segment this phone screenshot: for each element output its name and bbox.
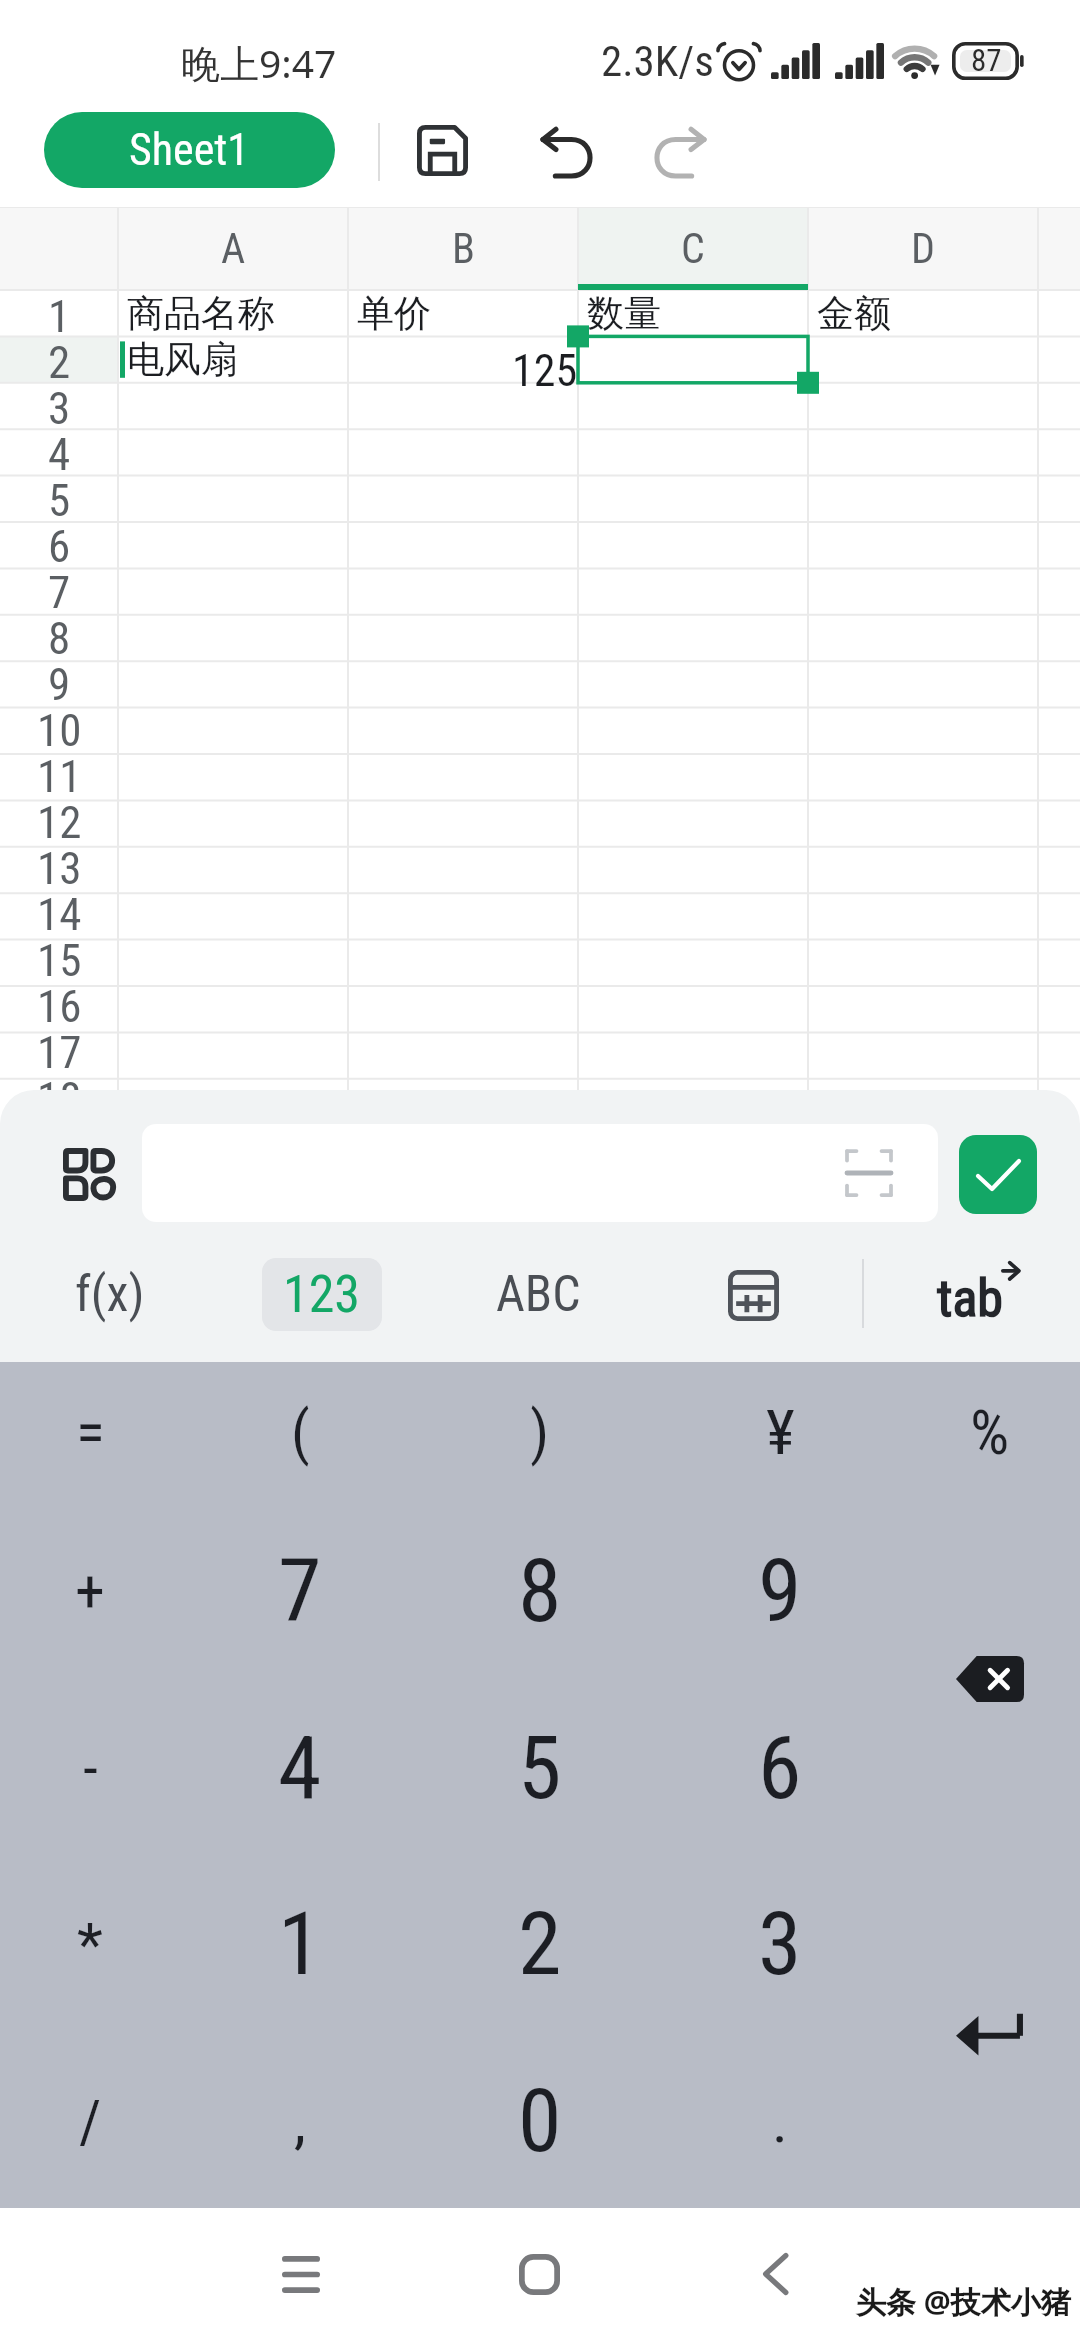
staticText: 0 bbox=[518, 2069, 562, 2172]
staticText: 11 bbox=[37, 750, 82, 796]
staticText: 123 bbox=[283, 1264, 361, 1325]
staticText: 6 bbox=[758, 1716, 802, 1819]
button[interactable]: Enter bbox=[900, 1855, 1080, 2208]
staticText: , bbox=[294, 2086, 306, 2156]
staticText: 2 bbox=[518, 1892, 562, 1995]
staticText: . bbox=[772, 2086, 788, 2156]
staticText: 头条 @技术小猪 bbox=[856, 2281, 1071, 2322]
staticText: 13 bbox=[37, 842, 82, 888]
staticText: + bbox=[75, 1556, 105, 1626]
button[interactable]: . bbox=[660, 2032, 900, 2209]
staticText: 5 bbox=[48, 474, 71, 520]
button[interactable]: Redo bbox=[639, 106, 727, 194]
button[interactable]: 5 bbox=[420, 1679, 660, 1856]
button[interactable]: 7 bbox=[180, 1502, 420, 1679]
button[interactable]: Sheet1 bbox=[44, 112, 335, 188]
staticText: 3 bbox=[758, 1892, 802, 1995]
staticText: 9 bbox=[758, 1539, 802, 1642]
staticText: 14 bbox=[37, 888, 82, 934]
staticText: 87 bbox=[971, 42, 1002, 78]
button[interactable]: / bbox=[0, 2032, 180, 2209]
button[interactable]: 1 bbox=[180, 1855, 420, 2032]
button[interactable]: - bbox=[0, 1679, 180, 1856]
staticText: 10 bbox=[37, 704, 82, 750]
staticText: 8 bbox=[518, 1539, 562, 1642]
staticText: 1 bbox=[48, 290, 71, 336]
staticText: tab bbox=[937, 1268, 1003, 1329]
staticText: 125 bbox=[512, 345, 578, 391]
staticText: D bbox=[911, 224, 935, 273]
staticText: 商品名称 bbox=[127, 290, 275, 336]
staticText: ¥ bbox=[766, 1396, 795, 1469]
staticText: C bbox=[681, 224, 705, 273]
staticText: - bbox=[83, 1733, 98, 1803]
button[interactable]: ABC bbox=[460, 1252, 616, 1336]
button[interactable]: Recent apps bbox=[246, 2219, 356, 2329]
staticText: 单价 bbox=[357, 290, 431, 336]
staticText: 2 bbox=[48, 336, 71, 382]
button[interactable]: 3 bbox=[660, 1855, 900, 2032]
staticText: 7 bbox=[278, 1539, 322, 1642]
staticText: 7 bbox=[48, 566, 71, 612]
staticText: 电风扇 bbox=[127, 336, 238, 382]
staticText: 17 bbox=[37, 1026, 82, 1072]
button[interactable]: f(x) bbox=[40, 1252, 180, 1336]
staticText: % bbox=[970, 1396, 1010, 1469]
button[interactable]: Home bbox=[484, 2219, 594, 2329]
button[interactable]: + bbox=[0, 1502, 180, 1679]
staticText: 8 bbox=[48, 612, 71, 658]
button[interactable]: Undo bbox=[520, 106, 608, 194]
staticText: / bbox=[79, 2086, 102, 2156]
button[interactable]: 9 bbox=[660, 1502, 900, 1679]
button[interactable] bbox=[142, 1124, 938, 1222]
staticText: 3 bbox=[48, 382, 71, 428]
button[interactable]: 6 bbox=[660, 1679, 900, 1856]
staticText: = bbox=[76, 1397, 105, 1467]
staticText: 晚上9:47 bbox=[181, 36, 337, 89]
staticText: f(x) bbox=[75, 1265, 145, 1324]
button[interactable]: Back bbox=[721, 2219, 831, 2329]
staticText: 6 bbox=[48, 520, 71, 566]
staticText: 4 bbox=[278, 1716, 322, 1819]
button[interactable]: , bbox=[180, 2032, 420, 2209]
button[interactable]: = bbox=[0, 1362, 180, 1502]
button[interactable]: * bbox=[0, 1855, 180, 2032]
staticText: 数量 bbox=[587, 290, 661, 336]
button[interactable]: Save bbox=[398, 106, 486, 194]
button[interactable]: ( bbox=[180, 1362, 420, 1502]
staticText: ABC bbox=[496, 1265, 581, 1324]
staticText: 2.3K/s bbox=[601, 36, 714, 86]
staticText: A bbox=[221, 224, 246, 273]
button[interactable]: 4 bbox=[180, 1679, 420, 1856]
button[interactable]: 123 bbox=[262, 1258, 382, 1331]
staticText: 16 bbox=[37, 980, 82, 1026]
button[interactable]: ¥ bbox=[660, 1362, 900, 1502]
staticText: 4 bbox=[48, 428, 71, 474]
staticText: 1 bbox=[278, 1892, 322, 1995]
button[interactable]: Insert cells bbox=[709, 1251, 797, 1339]
button[interactable]: 8 bbox=[420, 1502, 660, 1679]
staticText: ( bbox=[291, 1397, 310, 1467]
staticText: 金额 bbox=[817, 290, 891, 336]
button[interactable]: ) bbox=[420, 1362, 660, 1502]
button[interactable]: Confirm bbox=[959, 1135, 1037, 1214]
staticText: 18 bbox=[37, 1072, 82, 1118]
staticText: B bbox=[452, 224, 475, 273]
staticText: ) bbox=[530, 1397, 550, 1467]
button[interactable]: % bbox=[900, 1362, 1080, 1502]
button[interactable]: Backspace bbox=[900, 1502, 1080, 1855]
staticText: Sheet1 bbox=[129, 124, 250, 176]
staticText: 12 bbox=[37, 796, 82, 842]
button[interactable]: 0 bbox=[420, 2032, 660, 2209]
staticText: 5 bbox=[518, 1716, 562, 1819]
button[interactable]: Functions bbox=[51, 1136, 121, 1206]
button[interactable]: tab bbox=[902, 1252, 1042, 1336]
staticText: 9 bbox=[48, 658, 71, 704]
button[interactable]: 2 bbox=[420, 1855, 660, 2032]
staticText: * bbox=[77, 1909, 103, 1979]
staticText: 15 bbox=[37, 934, 82, 980]
